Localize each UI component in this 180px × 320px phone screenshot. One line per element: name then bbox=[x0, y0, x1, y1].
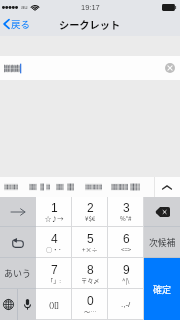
staticText: 6 bbox=[123, 232, 130, 245]
button[interactable]: 9 bbox=[108, 258, 144, 289]
staticText: 「」: bbox=[47, 276, 62, 285]
button[interactable]: 確定 bbox=[144, 258, 180, 320]
button[interactable]: Clear text bbox=[0, 56, 180, 80]
staticText: 1 bbox=[51, 201, 58, 214]
button[interactable]: 8 bbox=[72, 258, 108, 289]
staticText: シークレット bbox=[59, 17, 121, 32]
button[interactable] bbox=[110, 177, 145, 197]
staticText: 0 bbox=[87, 294, 94, 307]
staticText: 〒々〆 bbox=[81, 276, 100, 285]
button[interactable]: 次候補 bbox=[144, 227, 180, 258]
button[interactable]: 7 bbox=[36, 258, 72, 289]
staticText: ^|\ bbox=[122, 276, 130, 285]
button[interactable] bbox=[54, 177, 84, 197]
button[interactable] bbox=[0, 177, 26, 197]
staticText: 9 bbox=[123, 263, 130, 276]
button[interactable]: Delete bbox=[144, 197, 180, 227]
button[interactable]: Expand candidates bbox=[154, 177, 180, 197]
staticText: .,-/ bbox=[121, 300, 131, 309]
staticText: +×÷ bbox=[82, 245, 98, 254]
staticText: ¥$€ bbox=[85, 214, 96, 223]
button[interactable]: 0 bbox=[72, 289, 108, 320]
staticText: 2 bbox=[87, 201, 94, 214]
staticText: <=> bbox=[121, 245, 132, 254]
staticText: あいう bbox=[4, 267, 32, 280]
staticText: ()[] bbox=[49, 300, 59, 309]
button[interactable]: 4 bbox=[36, 227, 72, 258]
staticText: ○・･ bbox=[46, 245, 62, 254]
staticText: ☆♪→ bbox=[45, 214, 64, 223]
button[interactable]: Next keyboard bbox=[0, 289, 17, 320]
button[interactable]: 2 bbox=[72, 197, 108, 227]
staticText: %°# bbox=[120, 214, 132, 223]
staticText: au bbox=[21, 4, 28, 11]
staticText: 19:17 bbox=[81, 3, 100, 11]
staticText: 7 bbox=[51, 263, 58, 276]
button[interactable]: 6 bbox=[108, 227, 144, 258]
button[interactable] bbox=[0, 197, 36, 227]
staticText: 5 bbox=[87, 232, 94, 245]
button[interactable]: 5 bbox=[72, 227, 108, 258]
button[interactable]: .,-/ bbox=[108, 289, 144, 320]
button[interactable]: 戻る bbox=[0, 14, 37, 36]
button[interactable]: Clear text bbox=[165, 63, 175, 73]
button[interactable]: あいう bbox=[0, 258, 36, 289]
button[interactable]: 3 bbox=[108, 197, 144, 227]
staticText: 戻る bbox=[11, 17, 31, 31]
button[interactable] bbox=[84, 177, 110, 197]
staticText: ～… bbox=[84, 307, 97, 316]
staticText: 3 bbox=[123, 201, 130, 214]
staticText: 4 bbox=[51, 232, 58, 245]
button[interactable]: ()[] bbox=[36, 289, 72, 320]
button[interactable]: 1 bbox=[36, 197, 72, 227]
button[interactable]: Dictation bbox=[18, 289, 36, 320]
button[interactable]: Undo bbox=[0, 227, 36, 258]
staticText: 8 bbox=[87, 263, 94, 276]
staticText: 確定 bbox=[153, 283, 172, 296]
staticText: 次候補 bbox=[149, 236, 176, 249]
button[interactable] bbox=[26, 177, 54, 197]
